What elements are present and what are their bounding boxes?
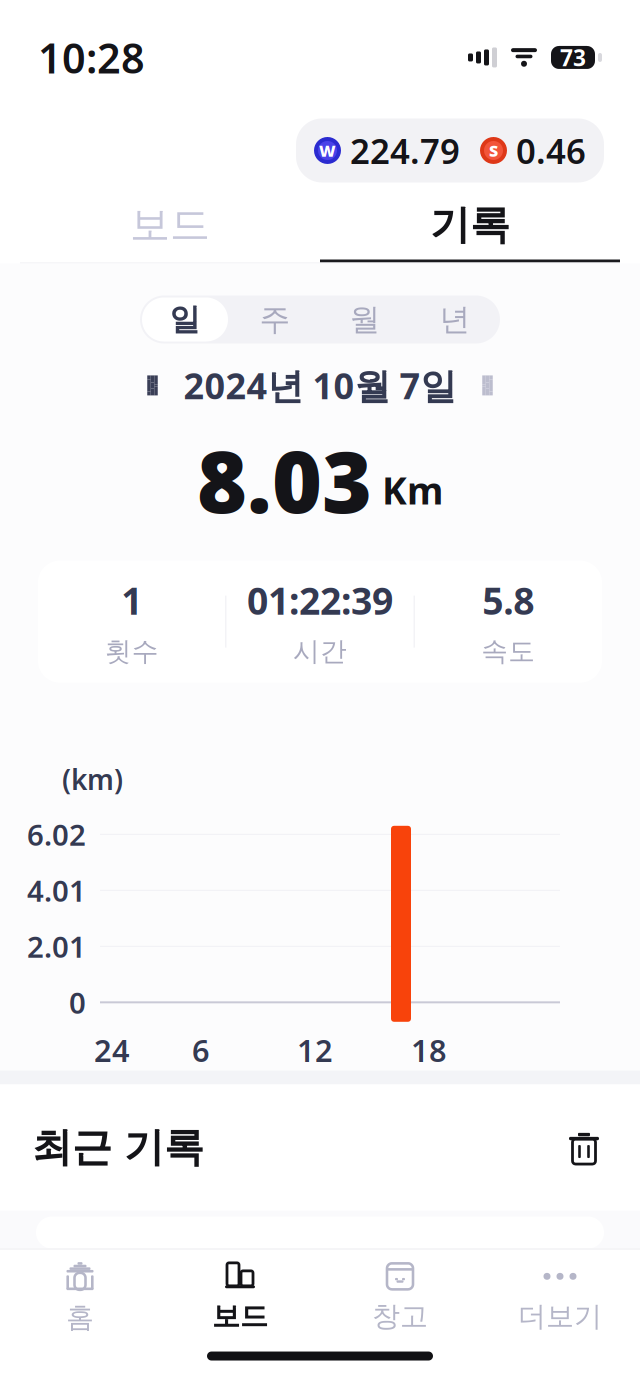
button[interactable]: 보드 xyxy=(160,1255,320,1339)
button[interactable]: 홈 xyxy=(0,1255,160,1339)
staticText: 일 xyxy=(169,301,200,338)
button[interactable]: 월 xyxy=(320,295,410,343)
staticText: 월 xyxy=(349,301,380,338)
staticText: 01:22:39 xyxy=(247,575,393,625)
button[interactable]: W xyxy=(296,118,604,182)
staticText: 6.02 xyxy=(27,815,86,854)
staticText: 홈 xyxy=(66,1300,94,1335)
button[interactable]: 더보기 xyxy=(480,1255,640,1339)
button[interactable]: 주 xyxy=(230,295,320,343)
button[interactable]: Previous day xyxy=(125,363,179,407)
button[interactable]: 창고 xyxy=(320,1255,480,1339)
staticText: 횟수 xyxy=(105,635,159,668)
staticText: 73 xyxy=(560,42,586,72)
button[interactable]: 기록 xyxy=(320,190,620,262)
staticText: 보드 xyxy=(130,200,210,249)
staticText: 속도 xyxy=(481,635,535,668)
staticText: W xyxy=(319,140,336,161)
staticText: Km xyxy=(382,465,443,515)
staticText: 0 xyxy=(69,983,86,1022)
staticText: 더보기 xyxy=(518,1299,602,1334)
staticText: 8.03 xyxy=(197,423,372,537)
staticText: 시간 xyxy=(293,635,347,668)
staticText: 0.46 xyxy=(516,127,586,173)
button[interactable]: 보드 xyxy=(20,190,320,262)
staticText: 최근 기록 xyxy=(32,1123,204,1172)
staticText: 창고 xyxy=(372,1299,428,1334)
staticText: 4.01 xyxy=(27,871,86,910)
staticText: 224.79 xyxy=(350,127,460,173)
button[interactable]: 일 xyxy=(140,295,230,343)
staticText: 2024년 10월 7일 xyxy=(183,361,456,409)
button[interactable]: 년 xyxy=(410,295,500,343)
staticText: 1 xyxy=(121,575,142,625)
staticText: 6 xyxy=(192,1030,210,1070)
button[interactable]: Delete records xyxy=(560,1123,608,1171)
staticText: 10:28 xyxy=(38,30,145,85)
staticText: 18 xyxy=(411,1030,447,1070)
staticText: 2.01 xyxy=(27,927,86,966)
staticText: 5.8 xyxy=(482,575,534,625)
staticText: 년 xyxy=(439,301,470,338)
staticText: S xyxy=(489,140,498,161)
staticText: 보드 xyxy=(212,1299,268,1334)
staticText: 주 xyxy=(259,301,290,338)
button[interactable]: Next day xyxy=(460,363,514,407)
staticText: 12 xyxy=(297,1030,333,1070)
staticText: 기록 xyxy=(430,200,510,249)
staticText: (km) xyxy=(62,761,123,798)
staticText: 24 xyxy=(94,1030,130,1070)
